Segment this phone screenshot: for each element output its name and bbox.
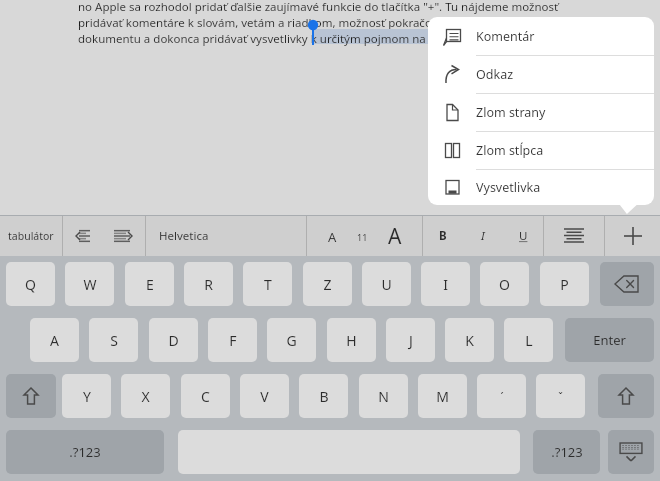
staticText: A [50, 331, 59, 350]
button[interactable]: Y [62, 374, 111, 418]
button[interactable]: Decrease indent [69, 224, 99, 248]
staticText: T [264, 275, 272, 294]
button[interactable]: B [299, 374, 348, 418]
staticText: pridávať komentáre k slovám, vetám a ria… [78, 15, 438, 31]
button[interactable]: Decrease indent [63, 216, 145, 256]
staticText: ˇ [558, 389, 563, 404]
button[interactable]: Align [560, 225, 588, 247]
staticText: S [110, 331, 118, 350]
button[interactable]: V [240, 374, 289, 418]
button[interactable]: Shift [6, 374, 56, 418]
staticText: tabulátor [8, 229, 54, 243]
button[interactable]: Align [544, 216, 604, 256]
staticText: B [319, 387, 329, 406]
button[interactable]: Smaller font [324, 224, 341, 250]
staticText: E [146, 275, 154, 294]
button[interactable]: Delete [600, 262, 654, 306]
button[interactable]: Odkaz [428, 56, 654, 93]
button[interactable]: A [30, 318, 79, 362]
button[interactable]: Smaller font [307, 216, 422, 256]
staticText: no Apple sa rozhodol pridať ďalšie zaují… [78, 0, 559, 15]
button[interactable]: O [480, 262, 529, 306]
staticText: D [168, 331, 179, 350]
button[interactable]: G [267, 318, 316, 362]
button[interactable]: Insert [605, 216, 660, 256]
button[interactable]: Larger font [384, 218, 406, 255]
staticText: A [328, 228, 337, 246]
button[interactable]: R [184, 262, 233, 306]
staticText: Vysvetlivka [476, 179, 541, 196]
button[interactable]: W [65, 262, 114, 306]
staticText: J [409, 331, 413, 350]
staticText: .?123 [551, 443, 583, 461]
button[interactable]: Zlom stĺpca [428, 132, 654, 169]
staticText: U [519, 228, 528, 244]
staticText: 11 [357, 231, 368, 243]
button[interactable]: M [418, 374, 467, 418]
button[interactable]: P [540, 262, 589, 306]
button[interactable]: C [181, 374, 230, 418]
button[interactable]: Shift [598, 374, 654, 418]
staticText: H [346, 331, 357, 350]
button[interactable]: I [421, 262, 470, 306]
staticText: W [83, 275, 97, 294]
staticText: Z [323, 275, 332, 294]
staticText: ´ [500, 389, 504, 404]
staticText: K [465, 331, 474, 350]
button[interactable]: .?123 [533, 430, 600, 474]
button[interactable]: tabulátor [0, 216, 62, 256]
staticText: C [201, 387, 210, 406]
button[interactable]: Q [6, 262, 55, 306]
staticText: Komentár [476, 28, 535, 45]
button[interactable]: L [504, 318, 553, 362]
staticText: .?123 [69, 443, 101, 461]
button[interactable]: X [121, 374, 170, 418]
staticText: V [260, 387, 269, 406]
staticText: Odkaz [476, 66, 514, 83]
staticText: X [141, 387, 150, 406]
staticText: Zlom stĺpca [476, 142, 544, 159]
button[interactable]: ˇ [536, 374, 585, 418]
button[interactable]: H [327, 318, 376, 362]
button[interactable]: 11 [357, 231, 368, 243]
button[interactable]: I [475, 222, 491, 250]
staticText: A [388, 222, 402, 251]
staticText: M [436, 387, 449, 406]
button[interactable]: E [125, 262, 174, 306]
button[interactable]: Increase indent [109, 224, 139, 248]
button[interactable]: .?123 [6, 430, 164, 474]
staticText: Y [83, 387, 91, 406]
button[interactable]: U [362, 262, 411, 306]
staticText: I [443, 275, 448, 294]
button[interactable]: D [149, 318, 198, 362]
button[interactable]: N [359, 374, 408, 418]
button[interactable]: K [445, 318, 494, 362]
button[interactable]: U [513, 222, 534, 250]
button[interactable]: S [89, 318, 138, 362]
button[interactable]: Hide keyboard [608, 430, 654, 474]
button[interactable]: B [433, 222, 453, 250]
staticText: R [204, 275, 213, 294]
staticText: B [439, 228, 447, 244]
button[interactable]: T [243, 262, 292, 306]
staticText: I [481, 228, 485, 244]
staticText: Enter [593, 331, 626, 349]
staticText: U [381, 275, 392, 294]
staticText: Helvetica [159, 228, 209, 244]
button[interactable]: Z [303, 262, 352, 306]
button[interactable]: Vysvetlivka [428, 170, 654, 205]
button[interactable]: B [423, 216, 543, 256]
button[interactable]: Komentár [428, 17, 654, 55]
button[interactable]: Zlom strany [428, 94, 654, 131]
button[interactable]: Helvetica [146, 216, 306, 256]
button[interactable]: ´ [477, 374, 526, 418]
staticText: P [560, 275, 569, 294]
button[interactable]: Enter [565, 318, 654, 362]
button[interactable]: J [386, 318, 435, 362]
staticText: N [378, 387, 389, 406]
button[interactable]: F [208, 318, 257, 362]
staticText: L [525, 331, 533, 350]
staticText: dokumentu a dokonca pridávať vysvetlivky… [78, 31, 442, 47]
staticText: O [499, 275, 510, 294]
